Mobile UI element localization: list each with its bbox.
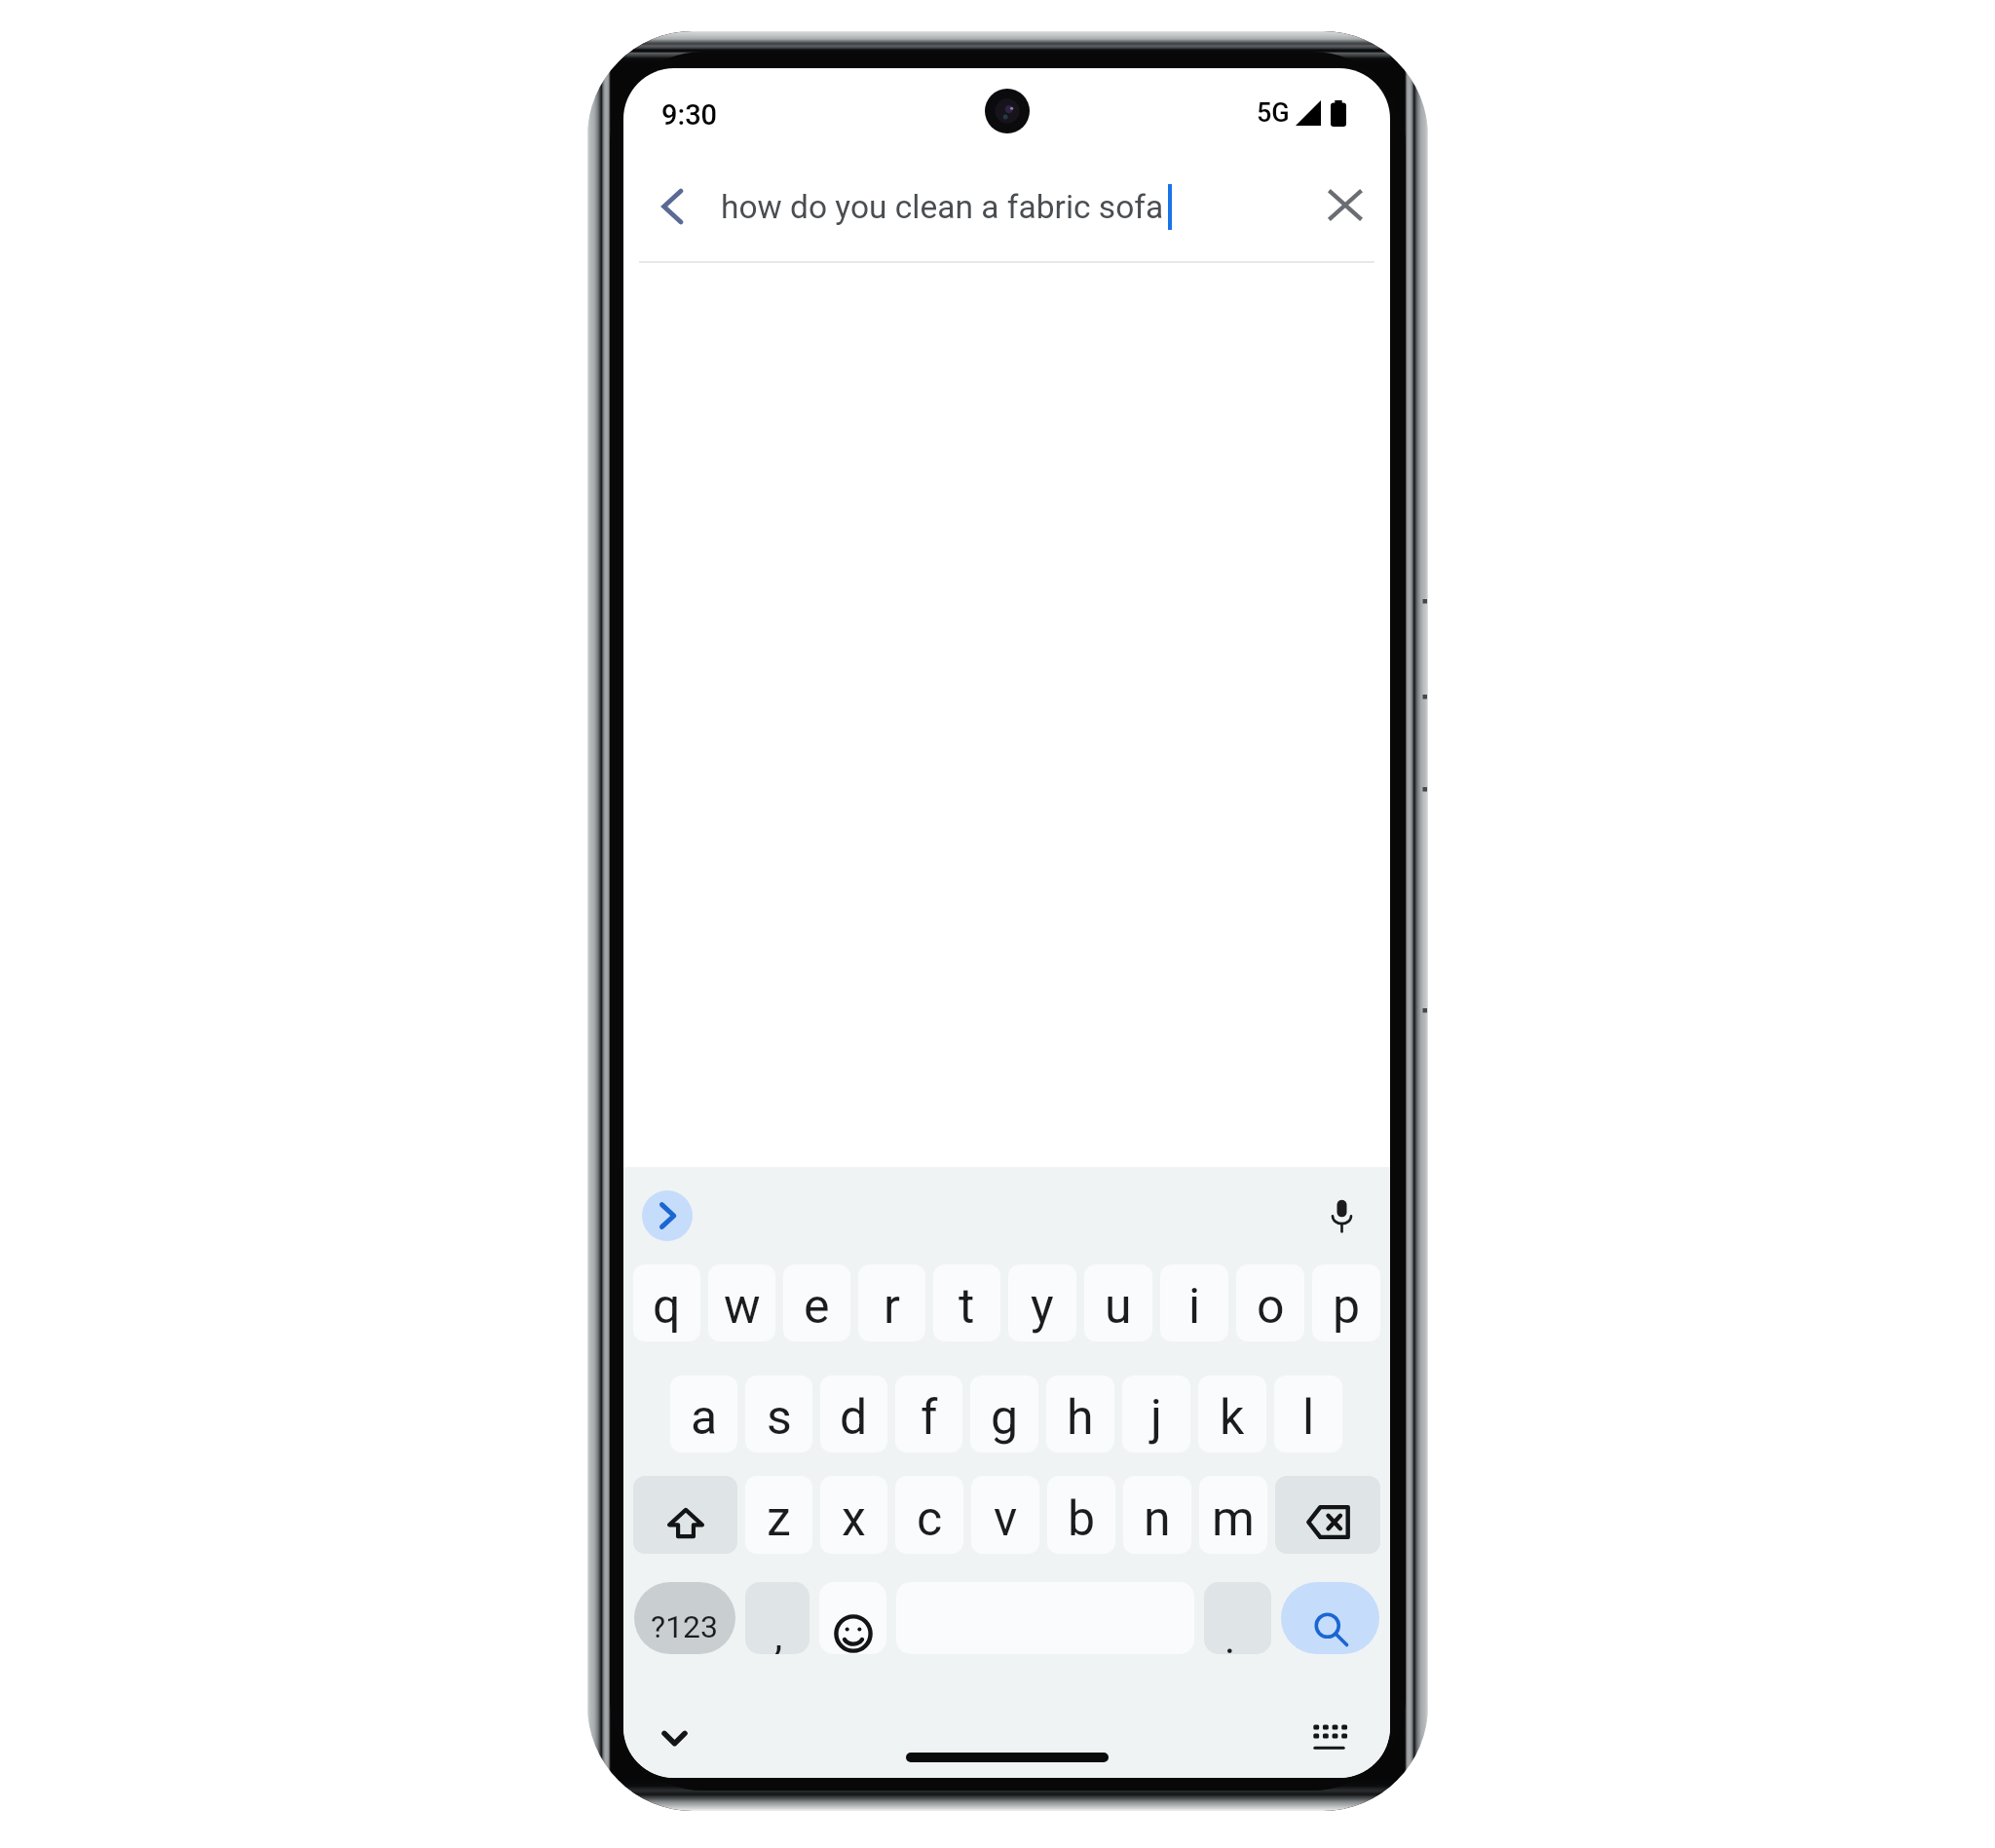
button[interactable]: e bbox=[783, 1264, 850, 1341]
staticText: p bbox=[1333, 1278, 1361, 1336]
staticText: q bbox=[653, 1278, 681, 1336]
button[interactable]: g bbox=[970, 1376, 1038, 1452]
button[interactable]: v bbox=[971, 1476, 1039, 1554]
button[interactable]: y bbox=[1008, 1264, 1076, 1341]
staticText: x bbox=[842, 1490, 866, 1548]
button[interactable]: Clear query bbox=[1289, 156, 1390, 257]
button[interactable]: h bbox=[1046, 1376, 1114, 1452]
button[interactable]: Voice input bbox=[1316, 1190, 1367, 1241]
staticText: u bbox=[1105, 1278, 1132, 1336]
staticText: n bbox=[1144, 1490, 1171, 1548]
button[interactable]: c bbox=[895, 1476, 963, 1554]
staticText: g bbox=[991, 1389, 1019, 1447]
button[interactable]: Shift bbox=[633, 1476, 737, 1554]
button[interactable]: s bbox=[745, 1376, 812, 1452]
staticText: e bbox=[804, 1278, 830, 1336]
button[interactable]: u bbox=[1084, 1264, 1152, 1341]
staticText: b bbox=[1068, 1490, 1096, 1548]
staticText: how do you clean a fabric sofa bbox=[721, 188, 1164, 226]
staticText: c bbox=[917, 1490, 943, 1548]
button[interactable]: q bbox=[633, 1264, 700, 1341]
button[interactable]: , bbox=[745, 1582, 809, 1654]
staticText: a bbox=[691, 1389, 718, 1447]
button[interactable]: Backspace bbox=[1275, 1476, 1380, 1554]
staticText: , bbox=[774, 1612, 783, 1654]
button[interactable]: Emoji bbox=[819, 1582, 886, 1654]
staticText: d bbox=[840, 1389, 868, 1447]
staticText: y bbox=[1031, 1278, 1054, 1336]
button[interactable]: p bbox=[1312, 1264, 1380, 1341]
staticText: z bbox=[767, 1490, 791, 1548]
staticText: v bbox=[994, 1490, 1018, 1548]
staticText: l bbox=[1302, 1389, 1315, 1447]
button[interactable]: o bbox=[1236, 1264, 1304, 1341]
staticText: 9:30 bbox=[661, 98, 718, 132]
button[interactable]: x bbox=[820, 1476, 887, 1554]
staticText: j bbox=[1150, 1389, 1162, 1447]
button[interactable]: z bbox=[745, 1476, 812, 1554]
staticText: 5G bbox=[1257, 97, 1290, 129]
staticText: t bbox=[959, 1278, 975, 1336]
button[interactable]: b bbox=[1047, 1476, 1115, 1554]
button[interactable]: ?123 bbox=[634, 1582, 735, 1654]
button[interactable]: f bbox=[895, 1376, 962, 1452]
staticText: m bbox=[1212, 1490, 1255, 1548]
button[interactable]: Back bbox=[623, 158, 721, 255]
button[interactable]: Switch keyboard bbox=[1301, 1709, 1356, 1763]
button[interactable]: r bbox=[858, 1264, 925, 1341]
button[interactable]: . bbox=[1204, 1582, 1271, 1654]
staticText: s bbox=[767, 1389, 792, 1447]
button[interactable]: Hide keyboard bbox=[647, 1711, 701, 1765]
staticText: h bbox=[1067, 1389, 1094, 1447]
button[interactable]: More suggestions bbox=[642, 1190, 693, 1241]
button[interactable]: a bbox=[670, 1376, 737, 1452]
button[interactable]: l bbox=[1274, 1376, 1342, 1452]
staticText: i bbox=[1188, 1278, 1201, 1336]
button[interactable]: i bbox=[1160, 1264, 1228, 1341]
staticText: f bbox=[921, 1389, 938, 1447]
staticText: . bbox=[1224, 1615, 1236, 1654]
button[interactable]: k bbox=[1198, 1376, 1266, 1452]
button[interactable]: m bbox=[1199, 1476, 1267, 1554]
button[interactable]: n bbox=[1123, 1476, 1191, 1554]
button[interactable]: j bbox=[1122, 1376, 1190, 1452]
button[interactable]: w bbox=[708, 1264, 775, 1341]
staticText: w bbox=[724, 1278, 761, 1336]
button[interactable]: d bbox=[820, 1376, 887, 1452]
button[interactable]: t bbox=[933, 1264, 1000, 1341]
staticText: o bbox=[1257, 1278, 1285, 1336]
staticText: ?123 bbox=[651, 1608, 719, 1645]
staticText: r bbox=[884, 1278, 900, 1336]
staticText: k bbox=[1220, 1389, 1245, 1447]
button[interactable]: Search bbox=[1281, 1582, 1379, 1654]
